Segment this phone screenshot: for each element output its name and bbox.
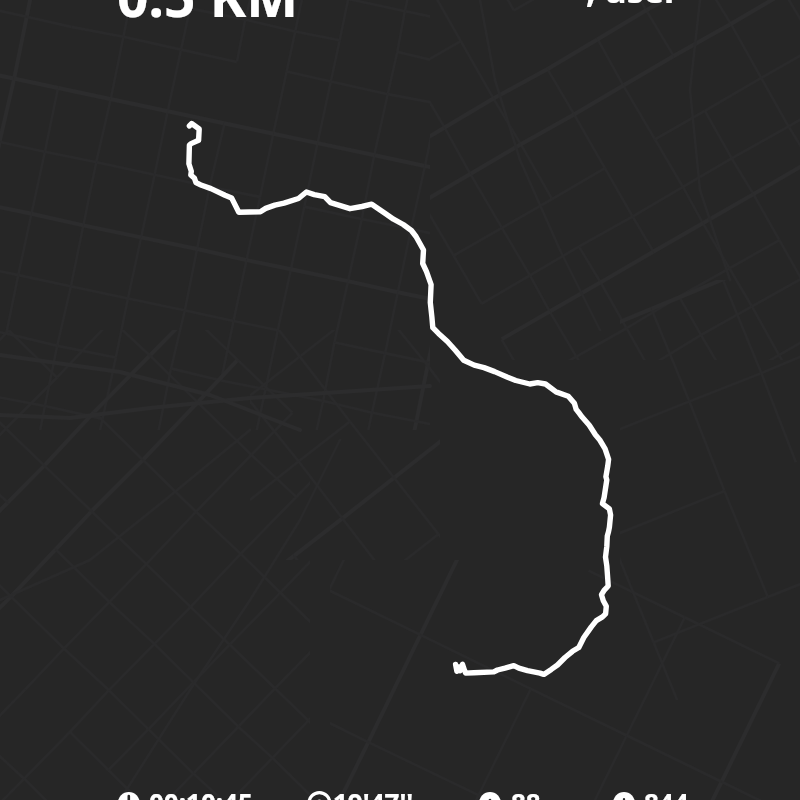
- staticText: 19'47'': [333, 785, 414, 800]
- button[interactable]: Average heart rate 88: [485, 768, 547, 800]
- staticText: 0.5 KM: [117, 0, 299, 24]
- button[interactable]: Pace 19 minutes 47 seconds per kilometre: [307, 768, 444, 800]
- staticText: 844: [644, 785, 689, 800]
- button[interactable]: 844 calories: [618, 768, 695, 800]
- button[interactable]: 0.5 KM: [110, 0, 300, 24]
- button[interactable]: Duration 00:10:45: [123, 768, 275, 800]
- button[interactable]: Route map: [0, 0, 800, 800]
- staticText: 88: [511, 785, 541, 800]
- button[interactable]: , user: [580, 0, 680, 9]
- staticText: 00:10:45: [149, 785, 253, 800]
- staticText: , user: [586, 0, 680, 9]
